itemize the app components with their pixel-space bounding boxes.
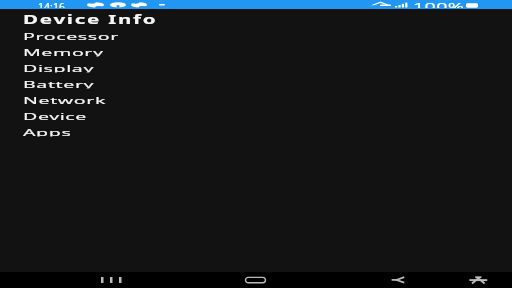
staticText: Device	[23, 109, 87, 121]
staticText: 100%	[413, 1, 465, 8]
button[interactable]: Processor	[0, 27, 512, 43]
staticText: Device Info	[23, 12, 159, 24]
button[interactable]: Home	[241, 272, 271, 288]
staticText: Memory	[23, 45, 104, 57]
button[interactable]: Battery	[0, 75, 512, 91]
staticText: Display	[23, 61, 94, 73]
button[interactable]: Display	[0, 59, 512, 75]
button[interactable]: Back	[384, 272, 412, 288]
button[interactable]: Network	[0, 91, 512, 107]
staticText: Apps	[23, 125, 72, 137]
button[interactable]: Recents	[96, 272, 126, 288]
button[interactable]: Memory	[0, 43, 512, 59]
staticText: Processor	[23, 29, 120, 41]
button[interactable]: Apps	[0, 123, 512, 139]
button[interactable]: Device	[0, 107, 512, 123]
staticText: 14:16	[38, 1, 66, 8]
staticText: Battery	[23, 77, 94, 89]
staticText: Network	[23, 93, 107, 105]
button[interactable]: Hide keyboard	[464, 272, 492, 288]
